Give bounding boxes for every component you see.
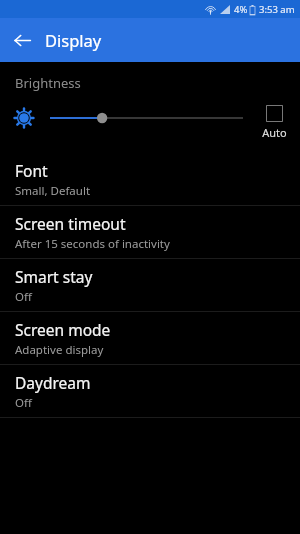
staticText: Screen mode [15, 319, 111, 340]
staticText: Adaptive display [15, 342, 104, 358]
staticText: Off [15, 395, 32, 411]
staticText: Small, Default [15, 183, 91, 199]
button[interactable]: Back [6, 24, 38, 56]
button[interactable]: Smart stay [0, 259, 300, 311]
staticText: Off [15, 289, 32, 305]
staticText: Display [45, 29, 102, 51]
button[interactable]: Screen timeout [0, 206, 300, 258]
staticText: After 15 seconds of inactivity [15, 236, 170, 252]
staticText: 3:53 am [259, 3, 295, 16]
button[interactable] [48, 103, 245, 133]
button[interactable]: Auto [251, 105, 297, 139]
button[interactable]: Font [0, 153, 300, 205]
staticText: Font [15, 160, 48, 181]
staticText: Smart stay [15, 266, 93, 287]
button[interactable]: Screen mode [0, 312, 300, 364]
staticText: Screen timeout [15, 213, 126, 234]
staticText: Auto [262, 125, 287, 139]
staticText: Brightness [15, 74, 81, 92]
button[interactable]: Brightness [11, 105, 37, 131]
staticText: 4% [234, 3, 248, 16]
button[interactable]: Daydream [0, 365, 300, 417]
staticText: Daydream [15, 372, 91, 393]
